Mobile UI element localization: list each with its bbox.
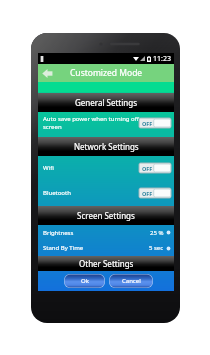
button[interactable]: Ok <box>64 274 105 288</box>
staticText: General Settings <box>75 97 138 108</box>
button[interactable]: Brightness <box>38 225 174 240</box>
staticText: OFF <box>142 190 153 197</box>
staticText: Screen Settings <box>77 210 135 221</box>
button[interactable]: Off toggle <box>139 118 171 128</box>
staticText: OFF <box>142 120 153 127</box>
staticText: Customized Mode <box>70 67 143 79</box>
button[interactable]: Bluetooth <box>38 180 174 206</box>
staticText: Other Settings <box>79 258 134 269</box>
button[interactable]: Customized Mode <box>38 64 174 82</box>
button[interactable]: Auto save power when turning off screen <box>38 108 174 137</box>
staticText: Cancel <box>122 277 141 285</box>
staticText: 5 sec <box>149 244 164 252</box>
staticText: 25 % <box>150 229 164 237</box>
button[interactable]: Off toggle <box>139 163 171 173</box>
button[interactable]: Cancel <box>109 274 153 288</box>
staticText: Auto save power when turning off screen <box>43 115 139 131</box>
staticText: OFF <box>142 165 153 172</box>
staticText: Brightness <box>43 229 150 237</box>
button[interactable]: Off toggle <box>139 188 171 198</box>
button[interactable]: Back <box>38 64 56 82</box>
staticText: Network Settings <box>74 141 139 152</box>
staticText: Wifi <box>43 164 139 172</box>
button[interactable]: Stand By Time <box>38 240 174 256</box>
staticText: Ok <box>81 277 89 285</box>
staticText: 11:23 <box>153 54 171 64</box>
button[interactable]: Wifi <box>38 155 174 180</box>
staticText: Stand By Time <box>43 244 149 252</box>
staticText: Bluetooth <box>43 189 139 197</box>
